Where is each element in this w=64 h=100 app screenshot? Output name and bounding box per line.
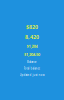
staticText: $1,204 [26,43,37,49]
staticText: 8,420 [25,33,39,40]
staticText: Balance [27,60,37,64]
staticText: Total balance [23,67,40,70]
staticText: Updated just now [19,73,44,77]
staticText: $820 [26,23,38,30]
staticText: $1,204.50 [24,52,40,57]
